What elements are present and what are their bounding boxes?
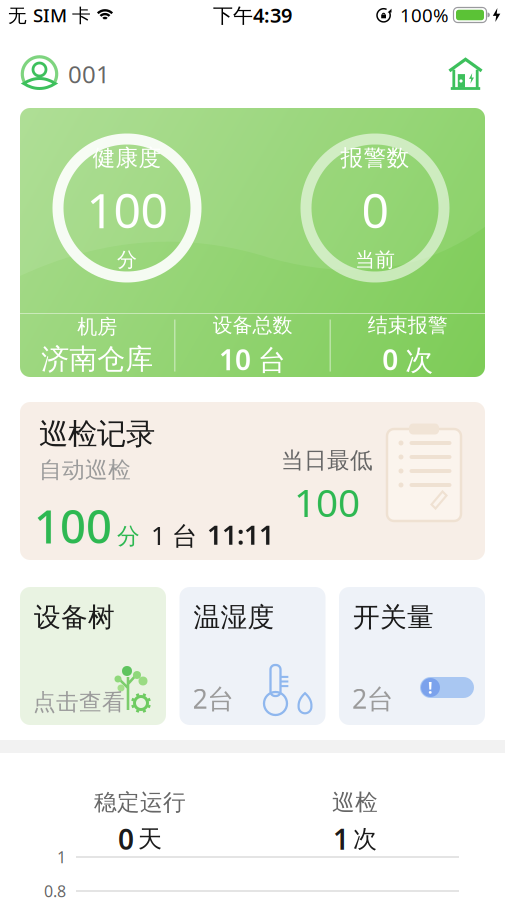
button[interactable]: 用户 001	[21, 55, 110, 92]
staticText: 1 台	[151, 518, 197, 552]
staticText: 点击查看	[33, 688, 125, 716]
staticText: 开关量	[353, 601, 434, 634]
staticText: 2台	[352, 681, 394, 716]
staticText: 100	[294, 476, 360, 527]
staticText: 次	[353, 824, 377, 854]
staticText: 100	[34, 496, 112, 556]
staticText: 机房	[77, 314, 117, 339]
button[interactable]: 温湿度	[179, 587, 325, 725]
staticText: 无 SIM 卡	[8, 3, 91, 27]
staticText: 0.8	[44, 880, 66, 900]
button[interactable]: 机房	[448, 57, 483, 90]
staticText: 001	[68, 58, 110, 90]
staticText: 分	[117, 522, 140, 550]
staticText: 0	[361, 178, 388, 241]
staticText: !	[428, 677, 433, 698]
staticText: 结束报警	[368, 313, 448, 338]
staticText: 10 台	[219, 341, 286, 378]
staticText: 巡检记录	[39, 416, 155, 452]
staticText: 1	[333, 820, 349, 857]
staticText: 设备树	[34, 601, 115, 634]
staticText: 济南仓库	[41, 342, 153, 376]
button[interactable]: 设备树	[20, 587, 166, 725]
staticText: 温湿度	[193, 601, 274, 634]
button[interactable]: 开关量	[339, 587, 485, 725]
staticText: 下午4:39	[213, 2, 292, 28]
staticText: 100	[86, 178, 167, 241]
staticText: 稳定运行	[94, 788, 186, 816]
staticText: 天	[138, 824, 162, 854]
staticText: 0	[118, 820, 134, 857]
staticText: 100%	[400, 3, 449, 27]
staticText: 0 次	[382, 341, 433, 378]
staticText: 巡检	[332, 788, 378, 816]
staticText: 健康度	[92, 144, 161, 172]
staticText: 报警数	[340, 144, 409, 172]
button[interactable]: 当日最低	[0, 402, 505, 560]
staticText: 1	[57, 846, 66, 868]
staticText: 设备总数	[212, 313, 292, 338]
staticText: 分	[117, 247, 137, 272]
staticText: 当前	[355, 247, 395, 272]
staticText: 11:11	[207, 517, 274, 552]
staticText: 自动巡检	[39, 456, 131, 484]
staticText: 2台	[192, 681, 234, 716]
staticText: 当日最低	[281, 446, 373, 474]
